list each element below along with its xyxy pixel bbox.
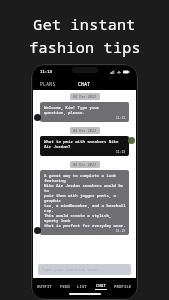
other: User avatar xyxy=(128,137,135,144)
button[interactable]: A great way to complete a look featuring xyxy=(40,170,129,235)
button[interactable]: Type your question here... xyxy=(38,264,131,275)
staticText: 04 Dec 2022 xyxy=(73,94,97,99)
button[interactable]: CHAT xyxy=(94,282,108,291)
staticText: 11:19 xyxy=(116,229,126,233)
staticText: fashion tips xyxy=(29,37,141,57)
button[interactable]: LIST xyxy=(76,283,88,290)
staticText: Type your question here... xyxy=(42,267,105,272)
staticText: that is perfect for everyday wear. xyxy=(44,223,126,228)
staticText: 11:13 xyxy=(40,69,52,74)
button[interactable]: PROFILE xyxy=(113,283,133,290)
staticText: 04 Dec 2022 xyxy=(73,162,97,167)
button[interactable]: What to pair with sneakers Nike xyxy=(40,136,129,156)
staticText: FEED xyxy=(60,284,70,289)
staticText: PROFILE xyxy=(114,284,132,289)
staticText: This would create a stylish, sporty look xyxy=(44,213,126,223)
staticText: 11:13 xyxy=(116,150,126,154)
other: Assistant avatar xyxy=(34,114,41,121)
button[interactable]: PLANS xyxy=(33,79,60,89)
staticText: Nike Air Jordan sneakers would be to xyxy=(44,183,126,193)
staticText: LIST xyxy=(77,284,87,289)
other: Assistant avatar xyxy=(34,227,41,234)
staticText: 11:13 xyxy=(116,116,126,120)
button[interactable]: Welcome, Kim! Type your xyxy=(40,102,129,122)
staticText: PLANS xyxy=(40,81,56,87)
staticText: CHAT xyxy=(96,283,106,288)
staticText: OUTFIT xyxy=(37,284,52,289)
staticText: tee, a windbreaker, and a baseball cap. xyxy=(44,203,126,213)
staticText: Get instant xyxy=(33,14,136,34)
button[interactable]: FEED xyxy=(59,283,71,290)
button[interactable]: OUTFIT xyxy=(36,283,53,290)
staticText: question, please. xyxy=(44,110,85,115)
button[interactable]: CHAT xyxy=(73,79,96,89)
staticText: 04 Dec 2022 xyxy=(73,128,97,133)
staticText: A great way to complete a look featuring xyxy=(44,173,126,183)
staticText: Air Jordan? xyxy=(44,144,71,149)
staticText: Welcome, Kim! Type your xyxy=(44,105,100,110)
staticText: CHAT xyxy=(78,81,91,87)
staticText: pair them with jogger pants, a graphic xyxy=(44,193,126,203)
staticText: What to pair with sneakers Nike xyxy=(44,139,119,144)
